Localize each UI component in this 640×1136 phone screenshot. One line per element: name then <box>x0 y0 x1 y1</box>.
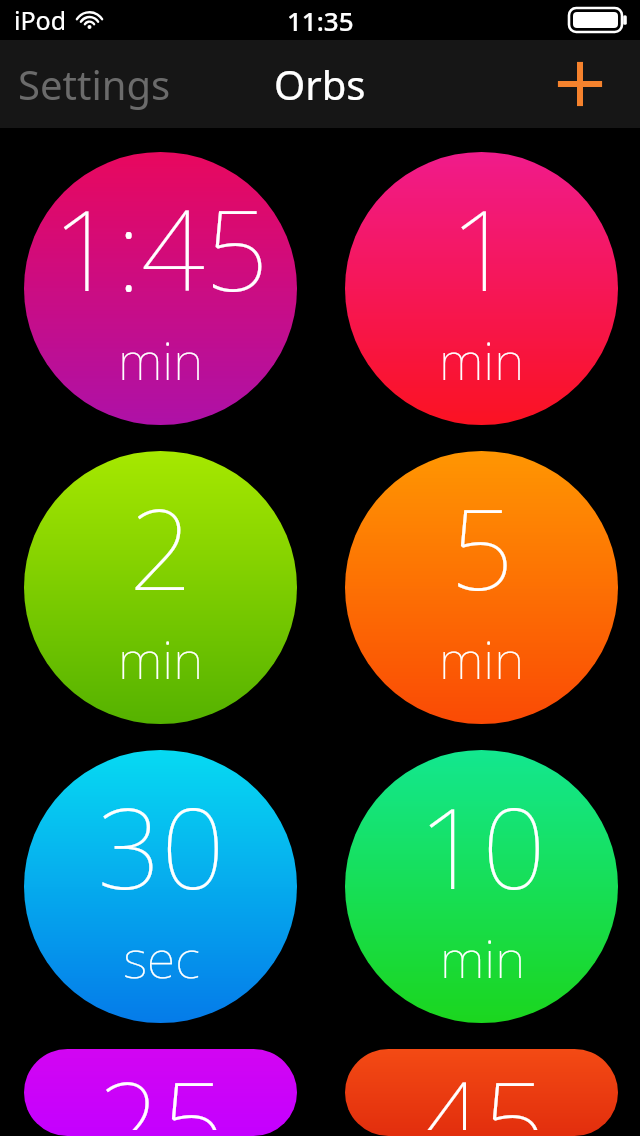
staticText: min <box>439 623 524 694</box>
button[interactable]: 1:45 <box>24 152 297 425</box>
button[interactable]: Settings <box>0 47 189 121</box>
staticText: Settings <box>18 57 171 111</box>
staticText: sec <box>123 922 200 993</box>
staticText: min <box>118 623 203 694</box>
staticText: iPod <box>14 3 67 37</box>
staticText: 30 <box>97 769 225 922</box>
staticText: min <box>440 922 525 993</box>
button[interactable]: 5 <box>345 451 618 724</box>
button[interactable]: 10 <box>345 750 618 1023</box>
staticText: Orbs <box>274 57 366 111</box>
button[interactable]: 2 <box>24 451 297 724</box>
staticText: min <box>118 324 203 395</box>
staticText: 1 <box>450 171 514 324</box>
button[interactable]: 30 <box>24 750 297 1023</box>
staticText: 10 <box>418 769 546 922</box>
staticText: 5 <box>450 470 514 623</box>
button[interactable]: 25 <box>24 1049 297 1136</box>
staticText: 45 <box>418 1049 546 1130</box>
button[interactable]: 1 <box>345 152 618 425</box>
staticText: 1:45 <box>52 171 269 324</box>
staticText: min <box>439 324 524 395</box>
staticText: 11:35 <box>287 3 354 38</box>
staticText: 25 <box>97 1049 225 1130</box>
staticText: 2 <box>129 470 193 623</box>
button[interactable]: Add timer <box>542 46 618 122</box>
button[interactable]: 45 <box>345 1049 618 1136</box>
